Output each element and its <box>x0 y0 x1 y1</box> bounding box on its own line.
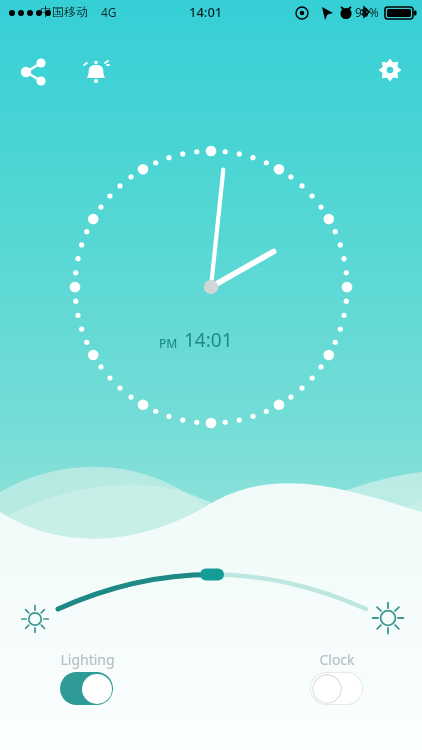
staticText: Clock <box>319 650 355 669</box>
staticText: 中国移动 <box>40 4 88 19</box>
staticText: 4G <box>101 4 117 20</box>
button[interactable]: Increase brightness <box>368 598 408 638</box>
button[interactable]: Decrease brightness <box>18 602 52 636</box>
button[interactable]: Clock off <box>310 672 363 705</box>
staticText: 98% <box>355 4 379 20</box>
button[interactable]: Share <box>14 52 54 92</box>
button[interactable]: Lighting on <box>60 672 113 705</box>
button[interactable]: Notifications <box>76 52 116 92</box>
staticText: PM <box>159 335 178 351</box>
staticText: 14:01 <box>189 3 223 21</box>
staticText: 14:01 <box>184 327 233 353</box>
button[interactable]: Settings <box>370 50 410 90</box>
staticText: Lighting <box>60 650 115 669</box>
